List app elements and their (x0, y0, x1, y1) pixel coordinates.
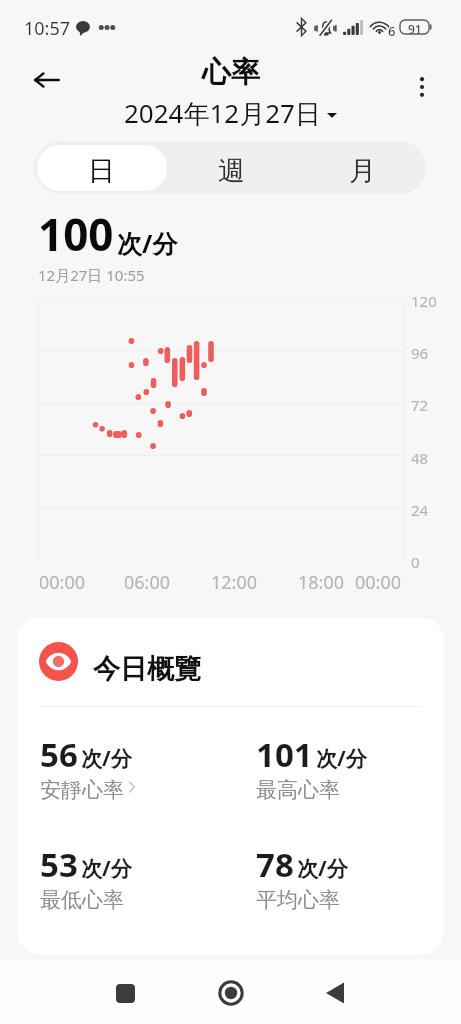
staticText: 日 (88, 154, 115, 188)
staticText: 次/分 (81, 854, 132, 883)
staticText: 平均心率 (256, 887, 340, 913)
staticText: 06:00 (124, 570, 171, 595)
staticText: 100 (38, 204, 114, 264)
staticText: 78 (256, 842, 294, 887)
staticText: 120 (411, 291, 437, 311)
staticText: 00:00 (355, 570, 402, 595)
staticText: 次/分 (81, 744, 132, 773)
staticText: 安靜心率 (40, 777, 124, 803)
button[interactable]: 56 (40, 732, 240, 812)
staticText: 96 (411, 343, 429, 363)
staticText: 次/分 (316, 744, 367, 773)
staticText: 12月27日 10:55 (38, 265, 145, 285)
button[interactable]: 78 (256, 842, 444, 922)
button[interactable]: 2024年12月27日 (124, 95, 337, 131)
button[interactable]: 日 (36, 141, 166, 194)
staticText: 00:00 (39, 570, 86, 595)
staticText: 12:00 (211, 570, 258, 595)
staticText: 0 (411, 552, 420, 572)
staticText: 91 (408, 21, 422, 37)
staticText: 月 (349, 154, 376, 188)
staticText: 2024年12月27日 (124, 95, 321, 131)
staticText: 次/分 (297, 854, 348, 883)
staticText: 53 (40, 842, 78, 887)
button[interactable]: 53 (40, 842, 240, 922)
staticText: 72 (411, 395, 429, 415)
staticText: 24 (411, 500, 429, 520)
button[interactable]: 月 (297, 141, 426, 194)
button[interactable]: Recent apps (101, 969, 149, 1017)
staticText: 最高心率 (256, 777, 340, 803)
staticText: 最低心率 (40, 887, 124, 913)
staticText: 56 (40, 732, 78, 777)
button[interactable]: Back (26, 60, 66, 100)
staticText: 週 (218, 154, 245, 188)
staticText: 次/分 (117, 226, 178, 260)
staticText: 101 (256, 732, 313, 777)
button[interactable]: Back (311, 969, 359, 1017)
button[interactable]: More options (402, 67, 442, 107)
button[interactable]: 101 (256, 732, 444, 812)
staticText: 心率 (202, 54, 260, 91)
staticText: 6 (388, 22, 396, 40)
staticText: 48 (411, 448, 429, 468)
button[interactable]: 週 (166, 141, 297, 194)
staticText: 18:00 (298, 570, 345, 595)
button[interactable]: Home (207, 969, 255, 1017)
staticText: 10:57 (24, 16, 71, 41)
staticText: 今日概覽 (93, 652, 201, 686)
